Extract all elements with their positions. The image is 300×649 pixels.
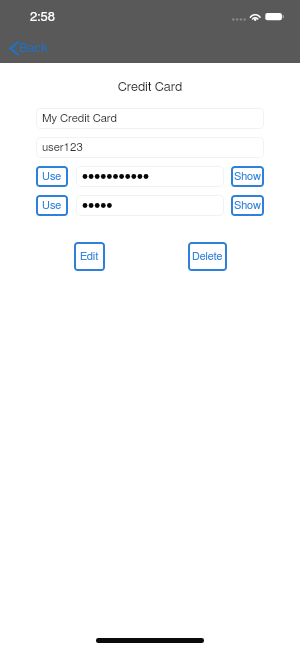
button[interactable]: Use (36, 195, 68, 216)
staticText: Back (19, 42, 48, 55)
staticText: Use (42, 200, 62, 211)
button[interactable]: Back (7, 40, 50, 57)
button[interactable]: Delete (188, 242, 227, 271)
button[interactable] (76, 166, 224, 187)
button[interactable] (76, 195, 224, 216)
button[interactable]: Use (36, 166, 68, 187)
staticText: Edit (80, 251, 99, 262)
button[interactable]: Show (231, 195, 264, 216)
staticText: My Credit Card (42, 113, 118, 124)
button[interactable]: Edit (74, 242, 105, 271)
staticText: Show (234, 171, 261, 182)
button[interactable]: user123 (36, 137, 264, 158)
staticText: Show (234, 200, 261, 211)
button[interactable]: Show (231, 166, 264, 187)
staticText: user123 (42, 142, 83, 153)
staticText: Use (42, 171, 62, 182)
staticText: Delete (192, 251, 223, 262)
staticText: 2:58 (30, 11, 55, 24)
button[interactable]: My Credit Card (36, 108, 264, 129)
staticText: Credit Card (0, 81, 300, 94)
